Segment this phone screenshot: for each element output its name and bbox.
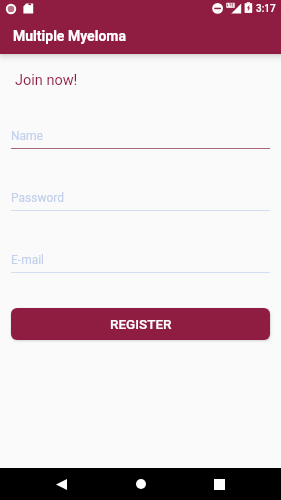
staticText: 3:17 bbox=[256, 3, 276, 15]
button[interactable]: Recent apps bbox=[196, 468, 243, 500]
button[interactable]: E-mail bbox=[11, 243, 270, 273]
staticText: Join now! bbox=[15, 72, 78, 89]
button[interactable]: Home bbox=[117, 468, 164, 500]
staticText: REGISTER bbox=[110, 316, 172, 332]
button[interactable]: Name bbox=[11, 119, 270, 149]
button[interactable]: Password bbox=[11, 181, 270, 211]
staticText: E-mail bbox=[11, 253, 45, 267]
staticText: Name bbox=[11, 129, 43, 143]
staticText: Password bbox=[11, 191, 65, 205]
staticText: Multiple Myeloma bbox=[13, 28, 126, 44]
button[interactable]: REGISTER bbox=[11, 308, 270, 340]
button[interactable]: Back bbox=[38, 468, 85, 500]
